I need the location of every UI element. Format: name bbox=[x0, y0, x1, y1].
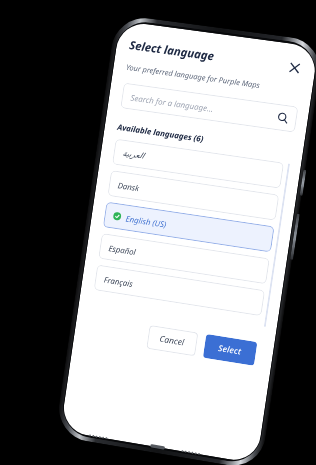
staticText: العربية bbox=[122, 149, 144, 161]
staticText: Español bbox=[108, 242, 136, 257]
staticText: Select bbox=[217, 342, 243, 358]
staticText: Dansk bbox=[117, 179, 140, 193]
button[interactable]: Cancel bbox=[146, 325, 198, 356]
staticText: Available languages (6) bbox=[117, 121, 205, 144]
button[interactable]: Search for a language... bbox=[120, 82, 298, 133]
button[interactable]: Dansk bbox=[107, 170, 279, 221]
staticText: Français bbox=[103, 274, 134, 289]
staticText: English (US) bbox=[125, 213, 167, 230]
button[interactable]: Français bbox=[94, 264, 265, 316]
button[interactable]: Español bbox=[98, 233, 270, 284]
staticText: Select language bbox=[128, 37, 285, 74]
staticText: Cancel bbox=[159, 333, 186, 349]
staticText: Your preferred language for Purple Maps bbox=[126, 62, 261, 90]
button[interactable]: Close bbox=[283, 56, 306, 79]
staticText: Search for a language... bbox=[130, 92, 278, 123]
button[interactable]: English (US) bbox=[103, 202, 275, 252]
button[interactable]: العربية bbox=[112, 139, 284, 189]
button[interactable]: Select bbox=[203, 334, 257, 366]
